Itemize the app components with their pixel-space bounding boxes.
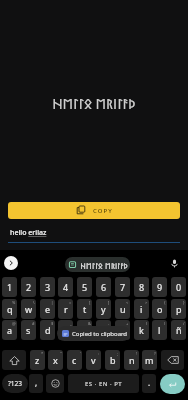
staticText: q: [7, 303, 13, 315]
staticText: %: [12, 300, 16, 305]
button[interactable]: w: [21, 299, 36, 319]
staticText: /: [183, 321, 185, 326]
button[interactable]: q: [2, 299, 17, 319]
staticText: hello erilaz: [10, 228, 47, 238]
staticText: &: [88, 321, 91, 326]
staticText: 4: [63, 281, 69, 293]
staticText: #: [32, 321, 35, 326]
button[interactable]: 0: [171, 277, 186, 297]
staticText: ES · EN · PT: [85, 380, 123, 388]
button[interactable]: ?123: [2, 374, 28, 393]
staticText: 3: [45, 281, 51, 293]
staticText: r: [64, 303, 68, 315]
button[interactable]: z: [30, 350, 45, 370]
staticText: f: [64, 324, 68, 336]
staticText: |: [51, 300, 54, 305]
staticText: 9: [157, 281, 163, 293]
staticText: m: [145, 354, 154, 366]
staticText: x: [53, 354, 58, 366]
staticText: ?: [154, 351, 156, 356]
button[interactable]: 6: [96, 277, 111, 297]
staticText: t: [83, 303, 87, 315]
staticText: e: [45, 303, 51, 315]
staticText: v: [91, 354, 96, 366]
button[interactable]: 7: [115, 277, 130, 297]
button[interactable]: ,: [29, 374, 43, 393]
staticText: {: [164, 300, 166, 305]
staticText: :: [98, 351, 100, 356]
button[interactable]: j: [115, 320, 130, 340]
button[interactable]: 8: [134, 277, 149, 297]
staticText: !: [136, 351, 138, 356]
staticText: i: [140, 303, 143, 315]
staticText: \: [33, 300, 35, 305]
button[interactable]: t: [77, 299, 92, 319]
button[interactable]: Shift: [2, 350, 26, 370]
button[interactable]: 2: [21, 277, 36, 297]
button[interactable]: 1: [2, 277, 17, 297]
button[interactable]: l: [152, 320, 167, 340]
staticText: j: [121, 324, 124, 336]
button[interactable]: Expand suggestions: [4, 256, 18, 270]
button[interactable]: p: [171, 299, 186, 319]
button[interactable]: x: [48, 350, 63, 370]
staticText: c: [72, 354, 77, 366]
staticText: ;: [117, 351, 119, 356]
button[interactable]: i: [134, 299, 149, 319]
button[interactable]: s: [21, 320, 36, 340]
button[interactable]: e: [40, 299, 55, 319]
staticText: 5: [82, 281, 88, 293]
button[interactable]: h: [96, 320, 111, 340]
staticText: =: [69, 300, 72, 305]
button[interactable]: b: [105, 350, 120, 370]
staticText: ): [164, 321, 166, 326]
button[interactable]: u: [115, 299, 130, 319]
staticText: p: [176, 303, 182, 315]
staticText: 1: [7, 281, 13, 293]
button[interactable]: g: [77, 320, 92, 340]
staticText: _: [70, 321, 72, 326]
button[interactable]: Enter: [160, 374, 185, 394]
button[interactable]: n: [124, 350, 139, 370]
button[interactable]: 4: [58, 277, 73, 297]
staticText: l: [158, 324, 161, 336]
staticText: *: [41, 351, 44, 356]
button[interactable]: m: [142, 350, 157, 370]
staticText: z: [35, 354, 40, 366]
staticText: -: [108, 321, 110, 326]
button[interactable]: v: [86, 350, 101, 370]
staticText: g: [82, 324, 88, 336]
button[interactable]: ñ: [171, 320, 186, 340]
staticText: 7: [120, 281, 126, 293]
button[interactable]: o: [152, 299, 167, 319]
button[interactable]: y: [96, 299, 111, 319]
staticText: h: [101, 324, 107, 336]
button[interactable]: ᚺᛖᛚᛚᛟ ᛖᚱᛁᛚᚨᚦ: [65, 257, 130, 272]
button[interactable]: .: [142, 374, 156, 393]
button[interactable]: ES · EN · PT: [68, 374, 139, 393]
staticText: >: [145, 300, 148, 305]
button[interactable]: c: [67, 350, 82, 370]
staticText: ": [60, 351, 62, 356]
button[interactable]: Voice input: [167, 256, 181, 270]
button[interactable]: Backspace: [161, 350, 184, 370]
staticText: o: [157, 303, 163, 315]
button[interactable]: 5: [77, 277, 92, 297]
staticText: }: [183, 300, 185, 305]
button[interactable]: Emoji: [46, 374, 64, 393]
staticText: y: [101, 303, 106, 315]
staticText: u: [120, 303, 126, 315]
button[interactable]: COPY: [8, 202, 180, 219]
button[interactable]: a: [2, 320, 17, 340]
staticText: 0: [176, 281, 182, 293]
button[interactable]: 3: [40, 277, 55, 297]
staticText: ]: [108, 300, 110, 305]
staticText: $: [51, 321, 54, 326]
button[interactable]: f: [58, 320, 73, 340]
staticText: ᚺᛖᛚᛚᛟ ᛖᚱᛁᛚᚨᚦ: [80, 260, 128, 271]
button[interactable]: 9: [152, 277, 167, 297]
button[interactable]: k: [134, 320, 149, 340]
button[interactable]: r: [58, 299, 73, 319]
button[interactable]: d: [40, 320, 55, 340]
staticText: ñ: [176, 324, 182, 336]
